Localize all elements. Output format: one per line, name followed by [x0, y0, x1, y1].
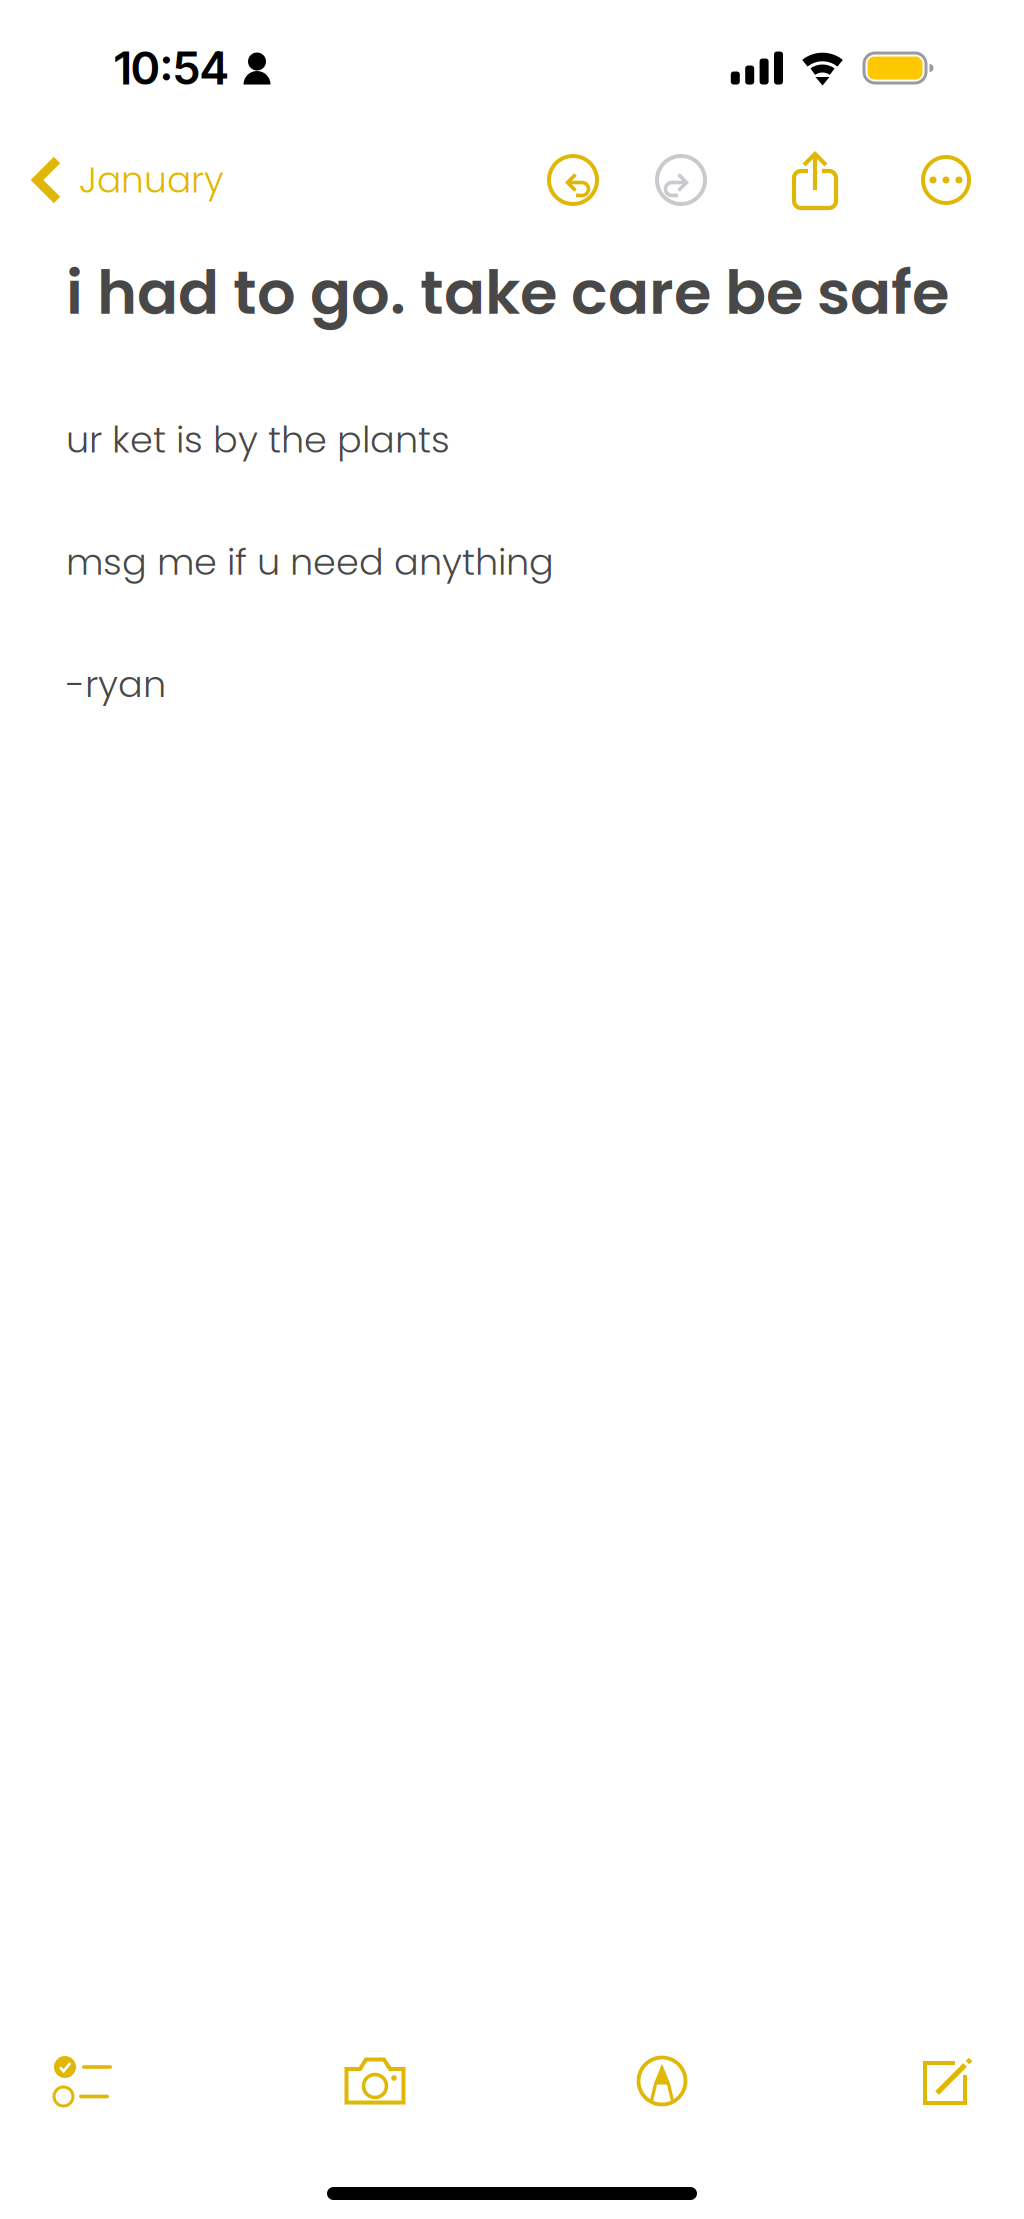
- button[interactable]: Undo: [533, 149, 613, 211]
- button[interactable]: Share: [775, 149, 855, 211]
- button[interactable]: New Note: [892, 2041, 1002, 2121]
- button[interactable]: Redo: [641, 149, 721, 211]
- staticText: ur ket is by the plants: [66, 414, 450, 465]
- staticText: -ryan: [66, 659, 166, 710]
- button[interactable]: Markup: [607, 2041, 717, 2121]
- button[interactable]: January: [0, 149, 224, 211]
- button[interactable]: More: [906, 149, 986, 211]
- staticText: 10:54: [114, 41, 228, 95]
- button[interactable]: Checklist: [28, 2041, 138, 2121]
- staticText: msg me if u need anything: [66, 536, 554, 588]
- staticText: January: [79, 155, 224, 205]
- button[interactable]: Camera: [320, 2041, 430, 2121]
- staticText: i had to go. take care be safe: [66, 250, 949, 335]
